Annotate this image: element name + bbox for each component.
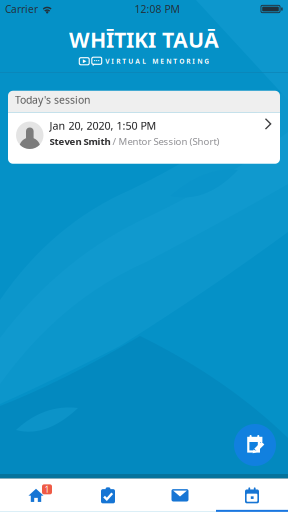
button[interactable]: New session [234,424,276,466]
staticText: V I R T U A L M E N T O R I N G [105,56,209,66]
staticText: Steven Smith [49,135,110,148]
staticText: Today's session [15,93,90,107]
button[interactable]: Tasks [72,479,144,512]
staticText: WHĪTIKI TAUĀ [69,25,219,54]
staticText: 1 [44,483,49,495]
button[interactable]: Calendar [216,479,288,512]
button[interactable]: Jan 20, 2020, 1:50 PM [8,113,280,164]
staticText: Jan 20, 2020, 1:50 PM [49,118,156,133]
button[interactable]: Home [0,479,72,512]
staticText: / Mentor Session (Short) [110,135,219,148]
staticText: 12:08 PM [134,2,179,16]
staticText: Carrier [5,2,38,16]
button[interactable]: Messages [144,479,216,512]
